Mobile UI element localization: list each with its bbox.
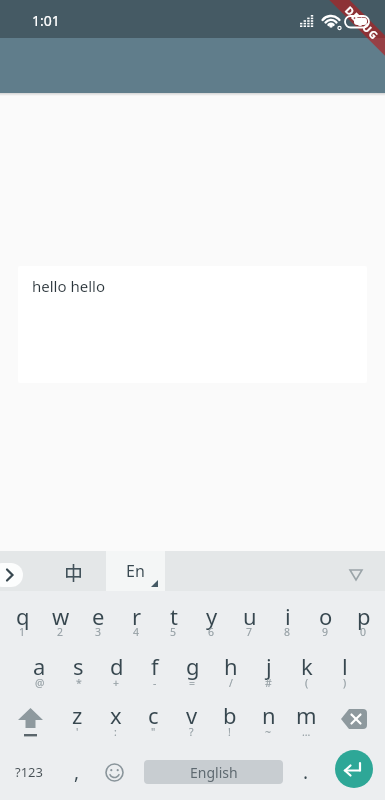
staticText: 1:01 xyxy=(32,11,60,30)
button[interactable] xyxy=(0,695,57,747)
staticText: ' xyxy=(76,725,79,739)
staticText: f xyxy=(151,651,159,681)
button[interactable]: z xyxy=(58,690,97,742)
button[interactable]: d xyxy=(97,641,136,693)
staticText: 0 xyxy=(360,625,367,639)
staticText: 5 xyxy=(170,625,177,639)
button[interactable]: En xyxy=(106,551,165,591)
button[interactable]: h xyxy=(211,641,250,693)
button[interactable]: , xyxy=(58,748,96,800)
staticText: i xyxy=(285,601,291,631)
button[interactable]: p xyxy=(344,591,383,643)
staticText: r xyxy=(132,601,142,631)
button[interactable]: w xyxy=(41,591,80,643)
staticText: , xyxy=(74,759,80,785)
staticText: ? xyxy=(189,725,194,739)
staticText: / xyxy=(229,676,233,690)
button[interactable] xyxy=(46,551,101,591)
staticText: v xyxy=(186,700,198,730)
staticText: l xyxy=(342,651,348,681)
button[interactable]: ?123 xyxy=(0,748,57,800)
staticText: : xyxy=(114,725,117,739)
staticText: 3 xyxy=(95,625,102,639)
button[interactable]: u xyxy=(230,591,269,643)
staticText: * xyxy=(76,676,82,690)
staticText: ( xyxy=(305,676,309,690)
button[interactable]: r xyxy=(117,591,156,643)
button[interactable]: q xyxy=(3,591,42,643)
staticText: h xyxy=(224,651,238,681)
button[interactable]: e xyxy=(79,591,118,643)
button[interactable] xyxy=(328,695,385,747)
staticText: ~ xyxy=(265,725,272,739)
staticText: u xyxy=(243,601,257,631)
staticText: m xyxy=(296,700,317,730)
button[interactable]: i xyxy=(268,591,307,643)
staticText: ) xyxy=(343,676,347,690)
staticText: 4 xyxy=(133,625,140,639)
button[interactable]: l xyxy=(325,641,364,693)
button[interactable]: v xyxy=(172,690,211,742)
button[interactable]: f xyxy=(135,641,174,693)
button[interactable]: b xyxy=(210,690,249,742)
staticText: 8 xyxy=(284,625,291,639)
staticText: … xyxy=(302,725,311,739)
button[interactable]: x xyxy=(96,690,135,742)
button[interactable]: s xyxy=(59,641,98,693)
staticText: w xyxy=(52,601,70,631)
staticText: . xyxy=(303,759,309,785)
staticText: = xyxy=(189,676,196,690)
staticText: s xyxy=(73,651,84,681)
staticText: English xyxy=(190,763,238,782)
staticText: + xyxy=(113,676,120,690)
staticText: 2 xyxy=(57,625,64,639)
button[interactable]: a xyxy=(20,641,59,693)
staticText: @ xyxy=(35,676,45,690)
staticText: q xyxy=(16,601,30,631)
button[interactable] xyxy=(341,556,371,586)
button[interactable]: t xyxy=(154,591,193,643)
button[interactable] xyxy=(335,750,373,788)
staticText: # xyxy=(265,676,272,690)
staticText: 7 xyxy=(246,625,253,639)
staticText: ?123 xyxy=(15,763,43,781)
staticText: 6 xyxy=(208,625,215,639)
staticText: t xyxy=(170,601,178,631)
staticText: hello hello xyxy=(32,276,105,296)
staticText: p xyxy=(357,601,371,631)
staticText: " xyxy=(151,725,156,739)
staticText: En xyxy=(126,560,145,582)
staticText: n xyxy=(262,700,276,730)
staticText: c xyxy=(148,700,159,730)
button[interactable]: hello hello xyxy=(18,266,367,383)
button[interactable]: o xyxy=(306,591,345,643)
staticText: DEBUG xyxy=(342,3,382,43)
staticText: - xyxy=(153,676,157,690)
staticText: y xyxy=(206,601,218,631)
button[interactable] xyxy=(96,748,135,800)
staticText: d xyxy=(110,651,124,681)
staticText: x xyxy=(110,700,122,730)
button[interactable]: n xyxy=(249,690,288,742)
staticText: g xyxy=(186,651,200,681)
staticText: o xyxy=(319,601,333,631)
button[interactable]: . xyxy=(287,748,325,800)
button[interactable]: y xyxy=(192,591,231,643)
staticText: ! xyxy=(228,725,231,739)
staticText: a xyxy=(33,651,46,681)
button[interactable]: m xyxy=(287,690,326,742)
staticText: k xyxy=(301,651,313,681)
staticText: 1 xyxy=(19,625,26,639)
button[interactable]: English xyxy=(144,760,283,784)
button[interactable]: k xyxy=(287,641,326,693)
staticText: j xyxy=(266,651,272,681)
staticText: e xyxy=(92,601,105,631)
staticText: 9 xyxy=(322,625,329,639)
button[interactable]: j xyxy=(249,641,288,693)
staticText: b xyxy=(223,700,237,730)
button[interactable] xyxy=(0,563,23,587)
button[interactable]: c xyxy=(134,690,173,742)
button[interactable]: g xyxy=(173,641,212,693)
staticText: z xyxy=(72,700,83,730)
